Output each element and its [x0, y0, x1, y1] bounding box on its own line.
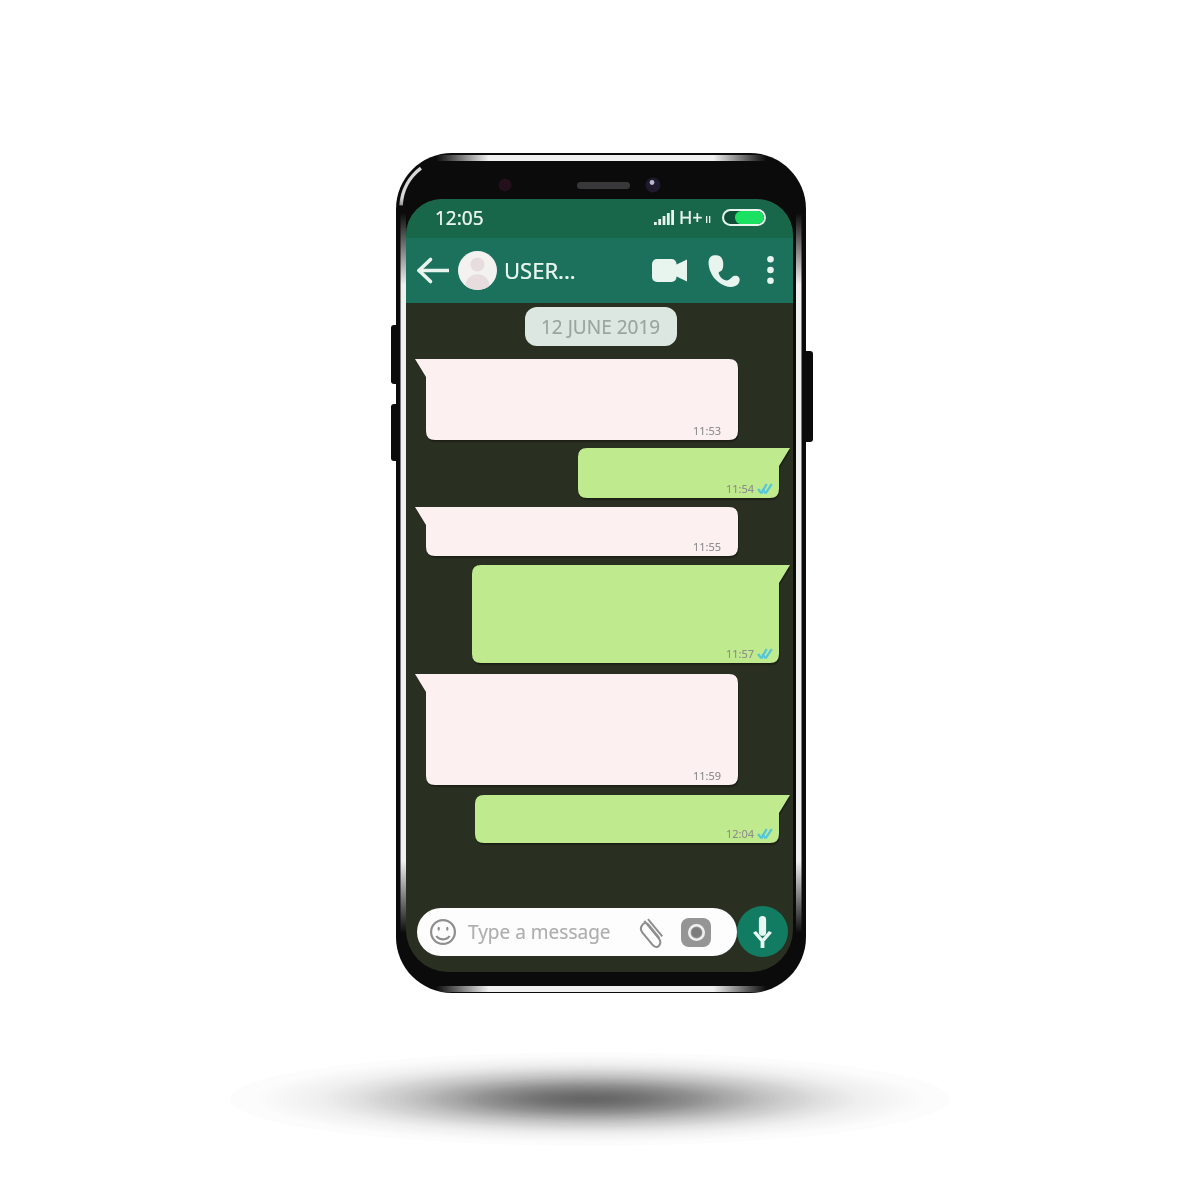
staticText: H+: [679, 205, 703, 230]
staticText: Type a message: [468, 919, 611, 945]
staticText: 11:55: [693, 539, 722, 554]
button[interactable]: Video call: [648, 250, 690, 290]
staticText: 12:05: [435, 205, 484, 231]
staticText: 11:59: [693, 768, 722, 783]
button[interactable]: 12:04: [475, 795, 790, 843]
button[interactable]: USER...: [458, 250, 576, 290]
button[interactable]: 11:59: [415, 674, 738, 785]
staticText: 12:04: [726, 826, 755, 841]
staticText: USER...: [504, 255, 576, 285]
button[interactable]: Emoji: [417, 908, 737, 956]
button[interactable]: Camera: [681, 918, 711, 947]
button[interactable]: Back: [413, 249, 453, 291]
button[interactable]: 11:57: [472, 565, 790, 663]
staticText: 11:54: [726, 481, 755, 496]
button[interactable]: Emoji: [430, 919, 456, 945]
button[interactable]: 11:55: [415, 507, 738, 556]
button[interactable]: Attach: [637, 915, 669, 949]
staticText: ıı: [705, 210, 712, 226]
staticText: 11:57: [726, 646, 755, 661]
button[interactable]: More options: [753, 250, 787, 290]
button[interactable]: 11:53: [415, 359, 738, 440]
button[interactable]: Record voice message: [737, 906, 788, 957]
staticText: 11:53: [693, 423, 722, 438]
button[interactable]: 12 JUNE 2019: [525, 307, 677, 346]
staticText: 12 JUNE 2019: [541, 314, 661, 340]
button[interactable]: 11:54: [578, 448, 790, 498]
button[interactable]: Call: [704, 248, 742, 292]
